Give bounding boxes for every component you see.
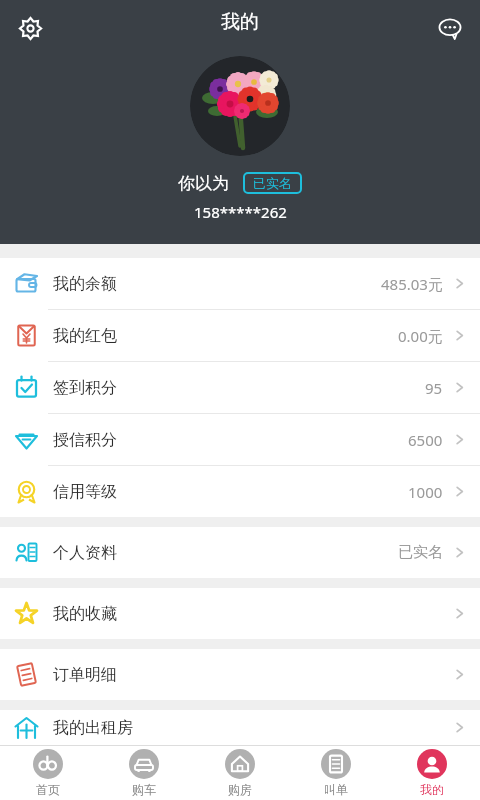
staticText: 158*****262 (194, 202, 287, 222)
staticText: 0.00元 (398, 326, 443, 346)
staticText: 95 (425, 378, 443, 398)
staticText: 你以为 (178, 173, 229, 194)
staticText: 购车 (132, 782, 156, 797)
staticText: 授信积分 (53, 430, 117, 450)
staticText: 已实名 (398, 543, 443, 562)
button[interactable]: 授信积分 (0, 414, 480, 466)
staticText: 订单明细 (53, 665, 117, 685)
button[interactable]: 已实名 (243, 172, 302, 194)
button[interactable]: Messages (428, 6, 472, 50)
staticText: 信用等级 (53, 482, 117, 502)
staticText: 我的收藏 (53, 604, 117, 624)
staticText: 购房 (228, 782, 252, 797)
button[interactable]: 购车 (96, 746, 192, 800)
staticText: 1000 (408, 482, 443, 502)
staticText: 我的 (420, 782, 444, 797)
button[interactable]: 首页 (0, 746, 96, 800)
staticText: 我的出租房 (53, 718, 133, 738)
button[interactable]: 信用等级 (0, 466, 480, 517)
staticText: 我的余额 (53, 274, 117, 294)
staticText: 首页 (36, 782, 60, 797)
staticText: 个人资料 (53, 543, 117, 563)
button[interactable]: 购房 (192, 746, 288, 800)
staticText: 已实名 (253, 175, 292, 191)
staticText: 6500 (408, 430, 443, 450)
staticText: 签到积分 (53, 378, 117, 398)
staticText: 我的红包 (53, 326, 117, 346)
button[interactable]: 叫单 (288, 746, 384, 800)
button[interactable]: 我的 (384, 746, 480, 800)
staticText: 叫单 (324, 782, 348, 797)
staticText: 485.03元 (381, 274, 443, 294)
button[interactable]: 订单明细 (0, 649, 480, 700)
button[interactable]: 我的红包 (0, 310, 480, 362)
button[interactable]: 我的收藏 (0, 588, 480, 639)
button[interactable]: Avatar (190, 56, 290, 156)
button[interactable]: 签到积分 (0, 362, 480, 414)
button[interactable]: Settings (8, 6, 52, 50)
button[interactable]: 我的出租房 (0, 710, 480, 745)
button[interactable]: 个人资料 (0, 527, 480, 578)
staticText: 我的 (221, 10, 259, 34)
button[interactable]: 我的余额 (0, 258, 480, 310)
